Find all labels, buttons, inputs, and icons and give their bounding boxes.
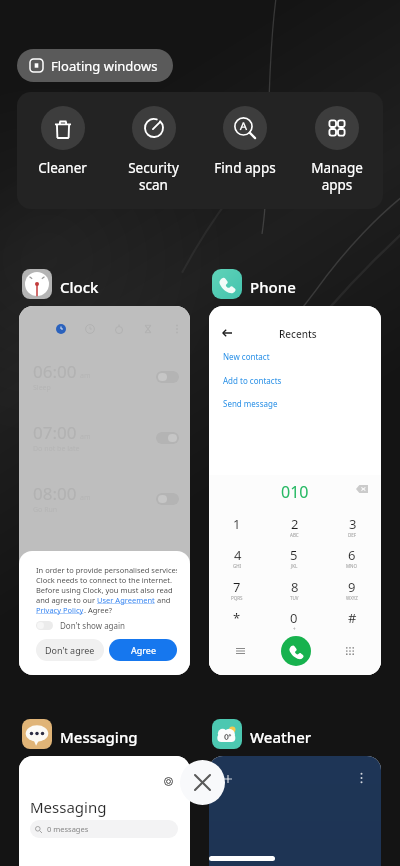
button[interactable]: Messaging [22,719,138,749]
staticText: 07:00 [33,421,77,444]
staticText: 2 [291,515,299,533]
button[interactable]: More options [352,769,370,787]
button[interactable]: Phone [212,269,296,299]
button[interactable]: Manage apps [291,92,383,209]
staticText: 0 messages [47,824,89,834]
staticText: 6 [348,546,356,564]
staticText: WXYZ [346,595,358,601]
staticText: 4 [234,546,242,564]
button[interactable]: Call [281,636,311,666]
staticText: User Agreement [97,595,155,605]
button[interactable]: Floating windows [17,49,173,82]
staticText: 06:00 [33,360,77,383]
button[interactable]: Agree [109,639,177,661]
staticText: 010 [281,481,309,503]
staticText: + [293,626,296,632]
staticText: Find apps [214,159,276,177]
staticText: Messaging [30,797,107,817]
staticText: 9 [348,578,356,596]
button[interactable]: New contact [223,351,270,362]
staticText: Manage apps [311,159,363,194]
staticText: Clock [60,277,99,297]
button[interactable]: 0 [270,609,318,637]
staticText: 8 [291,578,299,596]
staticText: Weather [250,727,312,747]
button[interactable]: Keypad [340,641,360,661]
button[interactable]: 06:00 [19,306,190,675]
button[interactable]: 8 [270,578,318,606]
button[interactable]: Don't agree [36,639,104,661]
staticText: Privacy Policy [36,605,84,615]
staticText: 7 [233,578,241,596]
button[interactable]: Find apps [199,92,291,209]
button[interactable]: Add city [219,770,237,788]
staticText: 3 [349,515,357,533]
button[interactable]: * [213,609,261,637]
button[interactable]: 3 [328,515,376,543]
staticText: Before using Clock, you must also read [36,585,173,595]
staticText: DEF [348,532,357,538]
button[interactable]: Clock [22,269,99,299]
button[interactable]: 2 [270,515,318,543]
staticText: In order to provide personalised service… [36,565,177,575]
button[interactable]: 6 [328,546,376,574]
staticText: # [348,609,357,627]
button[interactable]: 9 [328,578,376,606]
button[interactable]: 7 [213,578,261,606]
button[interactable]: 4 [213,546,261,574]
staticText: Agree [131,644,156,656]
staticText: Messaging [60,727,138,747]
staticText: Don't show again [60,620,126,631]
staticText: ABC [290,532,299,538]
staticText: 5 [290,546,298,564]
staticText: . Agree? [84,605,113,615]
staticText: MNO [346,563,358,569]
button[interactable]: Call log [230,641,250,661]
button[interactable]: Weather [212,719,312,749]
staticText: 08:00 [33,482,77,505]
staticText: PQRS [231,595,243,601]
staticText: and agree to our [36,595,97,605]
staticText: JKL [291,563,298,569]
button[interactable]: 5 [270,546,318,574]
button[interactable]: Add city [209,756,381,866]
staticText: Phone [250,277,296,297]
staticText: Don't agree [45,644,95,656]
staticText: 1 [233,515,241,533]
staticText: * [233,609,241,627]
staticText: Recents [279,327,317,341]
button[interactable]: Send message [223,398,278,409]
button[interactable]: 1 [213,515,261,543]
staticText: Clock needs to connect to the internet. [36,575,173,585]
button[interactable]: # [328,609,376,637]
staticText: GHI [233,563,242,569]
staticText: Security scan [128,159,179,194]
button[interactable]: Recents [209,306,381,675]
button[interactable]: Add to contacts [223,375,282,386]
button[interactable]: Security scan [108,92,199,209]
button[interactable]: 0 messages [30,820,178,838]
staticText: TUV [290,595,299,601]
staticText: and [155,595,171,605]
staticText: 0 [290,609,298,627]
button[interactable]: Close [180,760,225,805]
staticText: Floating windows [51,57,158,75]
button[interactable]: Account [160,773,177,790]
staticText: Cleaner [38,159,87,177]
button[interactable]: Account [19,756,190,866]
button[interactable]: Cleaner [17,92,108,209]
